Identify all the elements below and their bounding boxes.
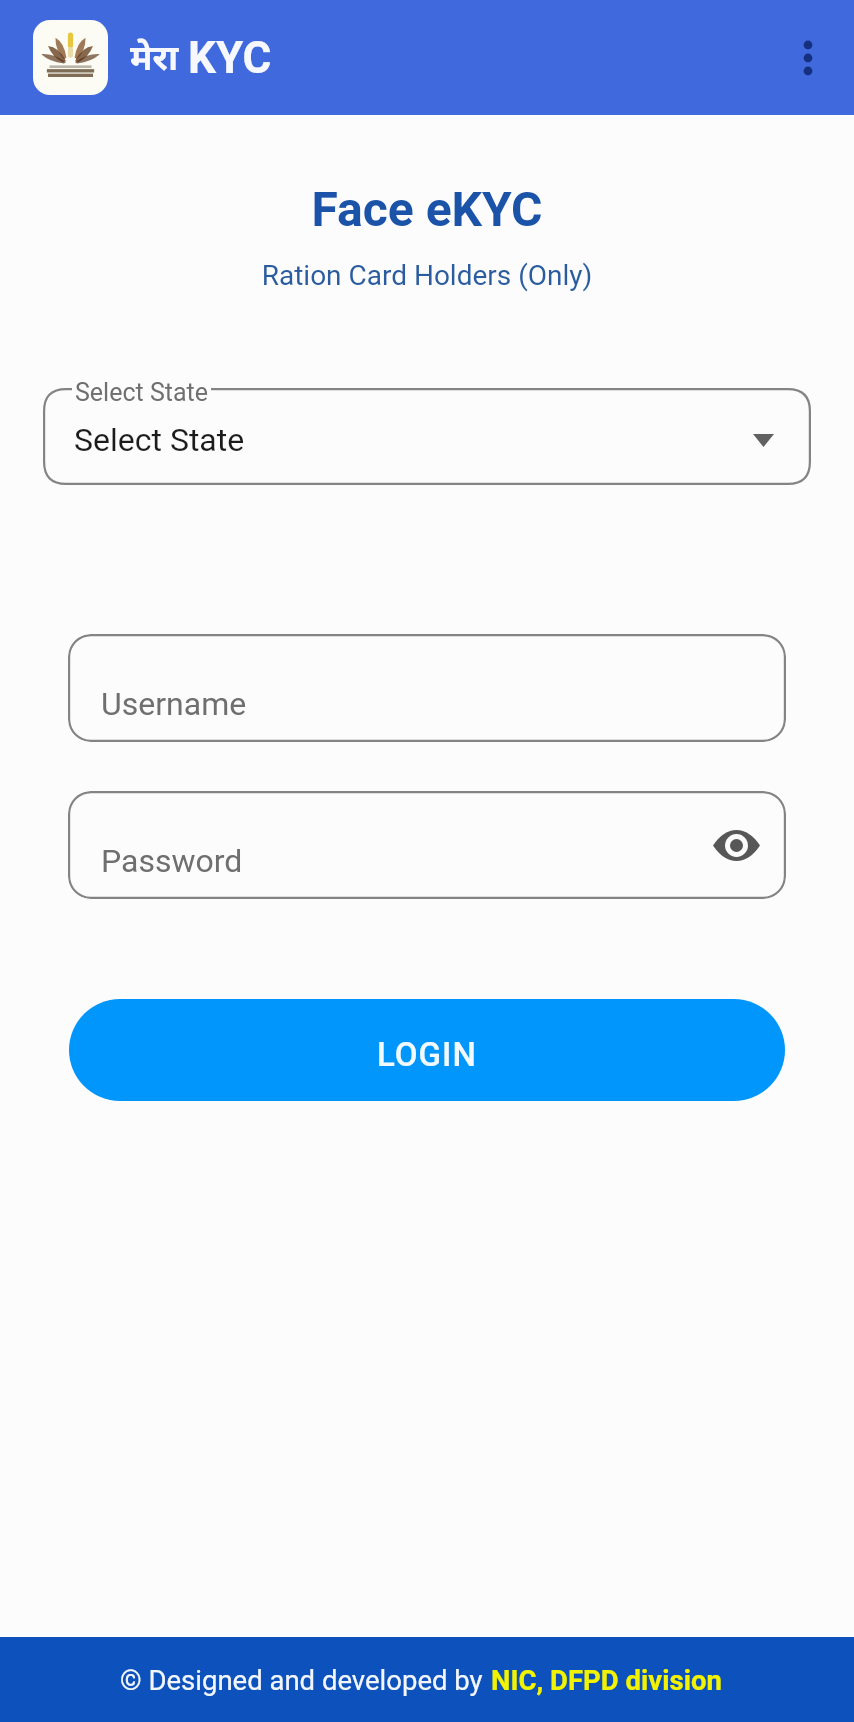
staticText: KYC [188, 32, 272, 84]
staticText: Select State [74, 421, 245, 459]
button[interactable]: Open state dropdown [741, 418, 785, 462]
staticText: Password [101, 842, 243, 880]
button[interactable]: Select State [43, 388, 811, 485]
button[interactable]: Username [68, 634, 786, 742]
button[interactable]: More options [778, 28, 838, 88]
staticText: © Designed and developed by [120, 1664, 483, 1696]
staticText: LOGIN [377, 1035, 477, 1074]
staticText: मेरा [130, 33, 179, 81]
staticText: NIC, DFPD division [491, 1664, 722, 1696]
button[interactable]: LOGIN [69, 999, 785, 1101]
staticText: Select State [75, 378, 208, 407]
button[interactable]: Password [68, 791, 786, 899]
staticText: Face eKYC [0, 181, 854, 237]
staticText: Ration Card Holders (Only) [0, 259, 854, 292]
button[interactable]: Toggle password visibility [703, 812, 769, 878]
staticText: Username [101, 685, 247, 723]
